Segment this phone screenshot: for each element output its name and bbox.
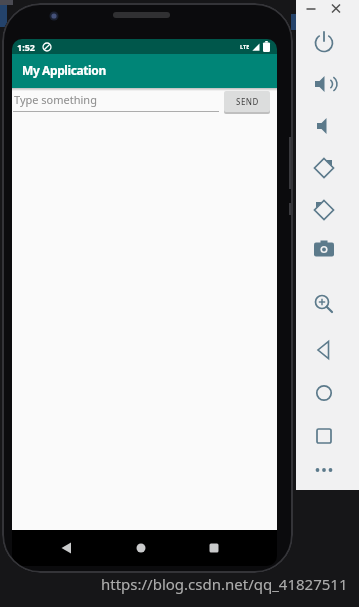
button[interactable] bbox=[329, 2, 343, 16]
button[interactable] bbox=[304, 2, 318, 16]
staticText: Type something bbox=[14, 92, 97, 107]
button[interactable] bbox=[307, 419, 341, 453]
button[interactable] bbox=[196, 530, 232, 566]
staticText: SEND bbox=[236, 96, 259, 107]
button[interactable] bbox=[307, 453, 341, 487]
button[interactable] bbox=[307, 67, 341, 101]
staticText: My Application bbox=[22, 62, 106, 78]
button[interactable] bbox=[48, 530, 84, 566]
staticText: LTE bbox=[240, 43, 250, 50]
button[interactable] bbox=[307, 109, 341, 143]
button[interactable] bbox=[307, 25, 341, 59]
button[interactable] bbox=[307, 151, 341, 185]
staticText: https://blog.csdn.net/qq_41827511 bbox=[101, 574, 348, 594]
staticText: 1:52 bbox=[17, 41, 35, 53]
button[interactable] bbox=[307, 287, 341, 321]
button[interactable]: SEND bbox=[224, 91, 270, 112]
button[interactable] bbox=[307, 333, 341, 367]
button[interactable]: Type something bbox=[13, 90, 219, 112]
button[interactable] bbox=[123, 530, 159, 566]
button[interactable] bbox=[307, 232, 341, 266]
button[interactable] bbox=[307, 376, 341, 410]
button[interactable] bbox=[307, 193, 341, 227]
